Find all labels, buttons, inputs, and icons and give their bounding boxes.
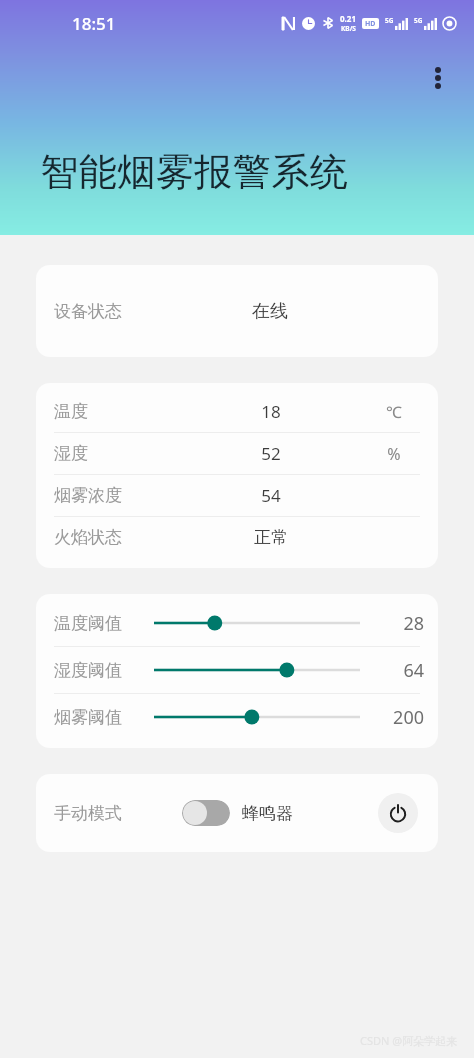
staticText: 54 — [174, 484, 368, 507]
staticText: 5G — [414, 16, 423, 25]
staticText: 火焰状态 — [54, 527, 174, 548]
staticText: 18 — [174, 400, 368, 423]
button[interactable]: 烟雾阈值 — [36, 694, 438, 740]
staticText: 烟雾浓度 — [54, 485, 174, 506]
staticText: 在线 — [252, 300, 288, 323]
button[interactable]: 火焰状态 — [36, 517, 438, 558]
button[interactable]: 烟雾浓度 — [36, 475, 438, 516]
button[interactable]: 温度阈值 — [36, 600, 438, 646]
staticText: 设备状态 — [54, 301, 122, 322]
button[interactable]: 温度 — [36, 391, 438, 432]
staticText: 52 — [174, 442, 368, 465]
button[interactable]: 湿度阈值 — [36, 647, 438, 693]
staticText: 烟雾阈值 — [54, 707, 146, 728]
staticText: 湿度 — [54, 443, 174, 464]
button[interactable]: Power — [378, 793, 418, 833]
staticText: 0.21 — [340, 13, 356, 24]
button[interactable]: 手动模式 — [54, 803, 122, 824]
button[interactable]: 设备状态 — [36, 265, 438, 357]
staticText: 智能烟雾报警系统 — [40, 148, 348, 196]
staticText: % — [368, 443, 420, 465]
staticText: CSDN @阿朵学起来 — [360, 1033, 458, 1048]
staticText: HD — [365, 19, 376, 29]
staticText: 200 — [370, 705, 424, 730]
staticText: KB/S — [341, 24, 356, 33]
button[interactable]: 湿度 — [36, 433, 438, 474]
staticText: 温度 — [54, 401, 174, 422]
button[interactable]: More options — [418, 58, 458, 98]
staticText: 温度阈值 — [54, 613, 146, 634]
staticText: 5G — [385, 16, 394, 25]
staticText: 18:51 — [72, 12, 116, 35]
staticText: 正常 — [174, 527, 368, 548]
button[interactable]: 蜂鸣器 — [242, 803, 293, 824]
button[interactable]: Manual mode toggle — [182, 800, 230, 826]
staticText: 64 — [370, 658, 424, 683]
staticText: 28 — [370, 611, 424, 636]
staticText: 湿度阈值 — [54, 660, 146, 681]
staticText: ℃ — [368, 401, 420, 423]
